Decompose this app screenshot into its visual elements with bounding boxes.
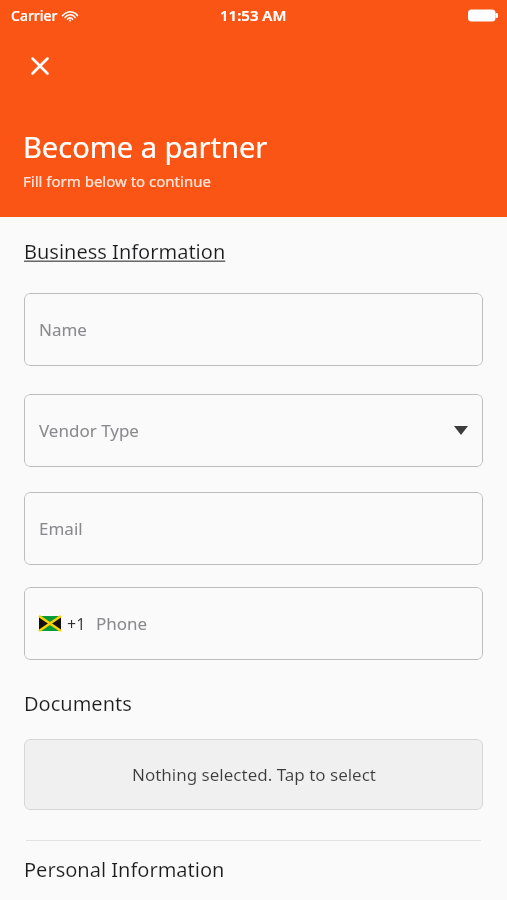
staticText: Nothing selected. Tap to select xyxy=(132,763,376,786)
button[interactable]: Name xyxy=(24,293,483,366)
staticText: Name xyxy=(39,318,468,341)
staticText: 11:53 AM xyxy=(220,5,287,25)
button[interactable]: +1 xyxy=(24,587,483,660)
staticText: Carrier xyxy=(11,6,58,25)
staticText: Business Information xyxy=(24,238,226,265)
button[interactable]: Nothing selected. Tap to select xyxy=(24,739,483,810)
button[interactable]: Close xyxy=(22,48,58,84)
staticText: Email xyxy=(39,517,468,540)
button[interactable]: Vendor Type xyxy=(24,394,483,467)
staticText: Phone xyxy=(96,612,148,635)
staticText: Documents xyxy=(24,690,132,717)
staticText: Personal Information xyxy=(24,856,225,883)
staticText: Fill form below to continue xyxy=(23,171,211,191)
staticText: Become a partner xyxy=(23,127,268,166)
button[interactable]: Email xyxy=(24,492,483,565)
staticText: Vendor Type xyxy=(39,419,454,442)
staticText: +1 xyxy=(67,613,86,635)
